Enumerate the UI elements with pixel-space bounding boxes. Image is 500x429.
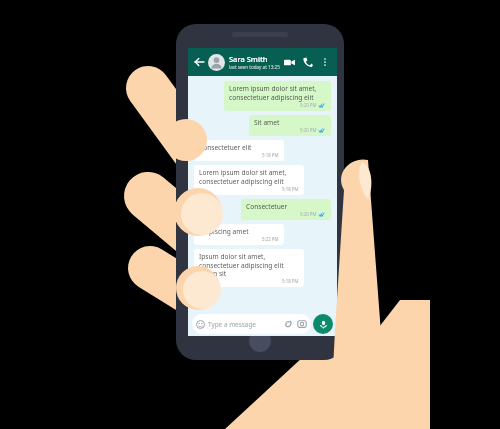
button[interactable]: Camera (297, 319, 307, 329)
staticText: Ipsum dolor sit amet, consectetuer adipi… (199, 252, 299, 278)
button[interactable]: Lorem ipsum dolor sit amet, consectetuer… (224, 81, 331, 111)
button[interactable]: Lorem ipsum dolor sit amet, consectetuer… (194, 165, 304, 195)
staticText: Lorem ipsum dolor sit amet, consectetuer… (199, 168, 299, 186)
button[interactable]: Sit amet (249, 115, 331, 136)
button[interactable]: Record voice message (313, 314, 333, 334)
staticText: 5:18 PM (282, 278, 299, 284)
staticText: Adipiscing amet (199, 227, 249, 236)
staticText: Consectetuer (246, 202, 288, 211)
staticText: 5:22 PM (262, 236, 279, 242)
button[interactable]: Ipsum dolor sit amet, consectetuer adipi… (194, 249, 304, 287)
button[interactable]: Back (192, 55, 206, 69)
button[interactable]: Adipiscing amet (194, 224, 284, 245)
staticText: Sit amet (254, 118, 280, 127)
button[interactable]: Call (300, 54, 316, 70)
staticText: 5:18 PM (282, 186, 299, 192)
staticText: 5:20 PM (300, 102, 317, 108)
staticText: last seen today at 13:25 (229, 64, 280, 70)
staticText: Sara Smith (229, 54, 268, 64)
button[interactable]: Consectetuer (241, 199, 331, 220)
button[interactable]: Consectetuer elit (194, 140, 284, 161)
staticText: 5:18 PM (262, 152, 279, 158)
staticText: 5:20 PM (300, 127, 317, 133)
staticText: Consectetuer elit (199, 143, 252, 152)
button[interactable]: Video call (281, 54, 297, 70)
staticText: Type a message (208, 320, 256, 329)
button[interactable]: Attach (283, 319, 293, 329)
button[interactable]: More options (318, 55, 332, 69)
staticText: Lorem ipsum dolor sit amet, consectetuer… (229, 84, 326, 102)
staticText: 5:20 PM (300, 211, 317, 217)
button[interactable]: Type a message (192, 314, 311, 334)
